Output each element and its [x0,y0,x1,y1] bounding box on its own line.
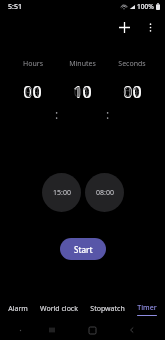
staticText: Minutes [69,59,96,69]
button[interactable]: Alarm [2,298,34,320]
staticText: Start [74,244,93,255]
staticText: Timer [137,303,157,313]
button[interactable]: 09 [57,81,107,101]
staticText: 11 [73,81,91,101]
staticText: 59 [123,81,141,101]
button[interactable]: 01 [8,81,57,101]
button[interactable]: More options [137,14,163,40]
staticText: : [55,106,59,122]
button[interactable]: 11 [57,81,107,101]
button[interactable]: 15:00 [42,173,81,212]
staticText: Alarm [8,304,28,314]
button[interactable]: Start [60,238,106,260]
staticText: 100% [137,2,154,11]
button[interactable]: 01 [107,81,157,101]
staticText: 01 [123,81,141,101]
staticText: World clock [40,304,78,314]
button[interactable]: 00 [8,81,57,103]
button[interactable]: World clock [34,298,84,320]
staticText: 08:00 [96,188,114,198]
button[interactable]: 99 [8,81,57,101]
staticText: 5:51 [8,2,22,12]
staticText: Stopwatch [90,304,125,314]
button[interactable]: Timer [130,298,163,320]
staticText: 01 [24,81,42,101]
button[interactable]: 08:00 [85,173,124,212]
staticText: 09 [73,81,91,101]
button[interactable]: Home [72,320,112,340]
button[interactable]: 00 [107,81,157,103]
staticText: Hours [23,59,43,69]
staticText: 00 [123,81,142,103]
staticText: : [106,106,110,122]
button[interactable]: Stopwatch [84,298,130,320]
button[interactable]: Recent apps [32,320,72,340]
staticText: Seconds [118,59,146,69]
button[interactable]: Add timer [111,14,137,40]
staticText: 10 [73,81,92,103]
staticText: 15:00 [53,188,71,198]
button[interactable]: Back [112,320,152,340]
staticText: 00 [23,81,42,103]
staticText: 99 [24,81,42,101]
button[interactable]: 59 [107,81,157,101]
button[interactable]: 10 [57,81,107,103]
